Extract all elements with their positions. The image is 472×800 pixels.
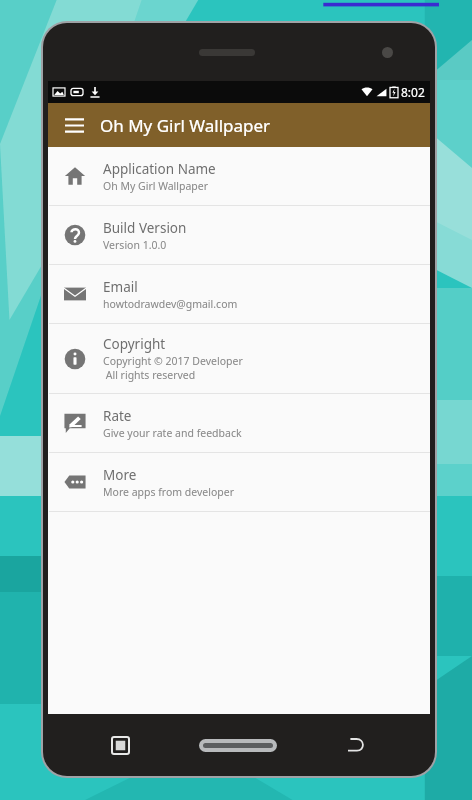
staticText: Copyright [103, 335, 166, 353]
button[interactable]: Recents [112, 737, 129, 754]
button[interactable]: Open navigation menu [57, 108, 91, 142]
staticText: Email [103, 278, 138, 296]
staticText: More [103, 466, 137, 484]
button[interactable]: Rate [48, 394, 430, 452]
staticText: Copyright © 2017 Developer [103, 354, 243, 368]
staticText: Build Version [103, 219, 187, 237]
button[interactable]: Application Name [48, 147, 430, 205]
staticText: Version 1.0.0 [103, 238, 167, 252]
button[interactable]: Back [346, 735, 366, 755]
staticText: Oh My Girl Wallpaper [103, 179, 209, 193]
staticText: Oh My Girl Wallpaper [100, 114, 271, 137]
staticText: Application Name [103, 160, 216, 178]
button[interactable]: Email [48, 265, 430, 323]
button[interactable]: Build Version [48, 206, 430, 264]
button[interactable]: More [48, 453, 430, 511]
staticText: More apps from developer [103, 485, 235, 499]
staticText: 8:02 [401, 84, 425, 100]
button[interactable]: Copyright [48, 324, 430, 393]
staticText: Give your rate and feedback [103, 426, 242, 440]
staticText: howtodrawdev@gmail.com [103, 297, 238, 311]
staticText: All rights reserved [103, 368, 196, 382]
button[interactable]: Home [199, 739, 277, 752]
staticText: Rate [103, 407, 132, 425]
